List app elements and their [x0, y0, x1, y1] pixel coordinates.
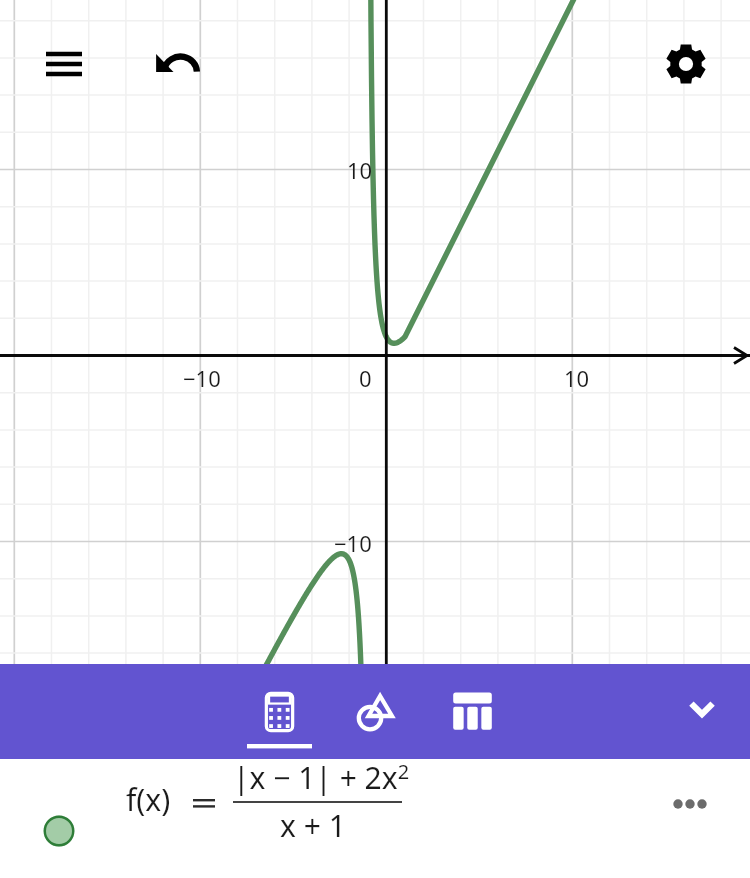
button[interactable]: Collapse: [670, 664, 734, 759]
button[interactable]: Settings: [658, 36, 714, 92]
button[interactable]: Calculator: [247, 664, 312, 759]
staticText: 10: [347, 155, 373, 185]
staticText: x + 1: [280, 805, 346, 846]
staticText: |x − 1| + 2x2: [233, 757, 410, 798]
button[interactable]: Menu: [36, 36, 92, 92]
staticText: 0: [359, 363, 372, 393]
button[interactable]: Toggle visibility: [42, 814, 76, 848]
staticText: 10: [564, 363, 590, 393]
button[interactable]: More options: [666, 780, 714, 828]
staticText: −10: [334, 528, 372, 558]
button[interactable]: Tools: [343, 664, 408, 759]
button[interactable]: Undo: [146, 36, 202, 92]
staticText: f(x): [126, 779, 171, 820]
button[interactable]: Table: [440, 664, 505, 759]
staticText: −10: [183, 363, 221, 393]
